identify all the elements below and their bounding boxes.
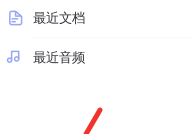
staticText: 最近文档 xyxy=(33,10,85,26)
button[interactable]: 最近音频 xyxy=(0,38,192,76)
button[interactable]: 最近文档 xyxy=(0,0,192,37)
staticText: 最近音频 xyxy=(33,49,85,66)
